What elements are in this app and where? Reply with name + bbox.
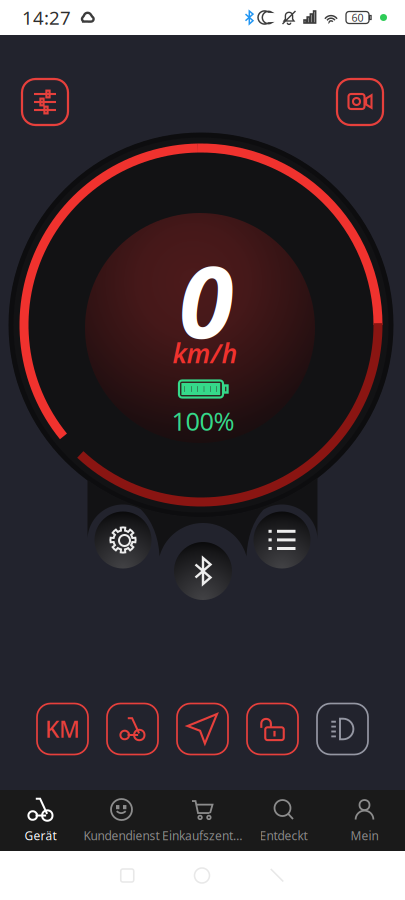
staticText: KM (45, 714, 80, 744)
button[interactable]: Einkaufszentr… (162, 790, 243, 851)
button[interactable]: Adjust settings (22, 79, 68, 125)
staticText: Kundendienst (83, 827, 159, 843)
button[interactable]: KM (37, 703, 88, 754)
button[interactable]: Records (253, 511, 310, 568)
button[interactable]: Mein (324, 790, 405, 851)
button[interactable]: Dash camera (337, 79, 383, 125)
button[interactable]: Gerät (0, 790, 81, 851)
button[interactable]: Kundendienst (81, 790, 162, 851)
staticText: 100% (171, 404, 234, 438)
button[interactable]: Scooter (107, 703, 158, 754)
staticText: 14:27 (22, 5, 71, 30)
button[interactable]: Lock (247, 703, 298, 754)
staticText: Gerät (24, 827, 56, 843)
button[interactable]: Entdeckt (243, 790, 324, 851)
button[interactable]: Settings (94, 511, 151, 568)
staticText: 60 (351, 10, 363, 25)
button[interactable]: Bluetooth (174, 542, 232, 600)
staticText: 0 (179, 234, 233, 365)
staticText: km/h (172, 335, 237, 371)
button[interactable]: Navigation (177, 703, 228, 754)
staticText: Einkaufszentr… (162, 827, 243, 843)
button[interactable]: Headlight (317, 703, 368, 754)
staticText: Entdeckt (259, 827, 307, 843)
staticText: Mein (350, 827, 378, 843)
